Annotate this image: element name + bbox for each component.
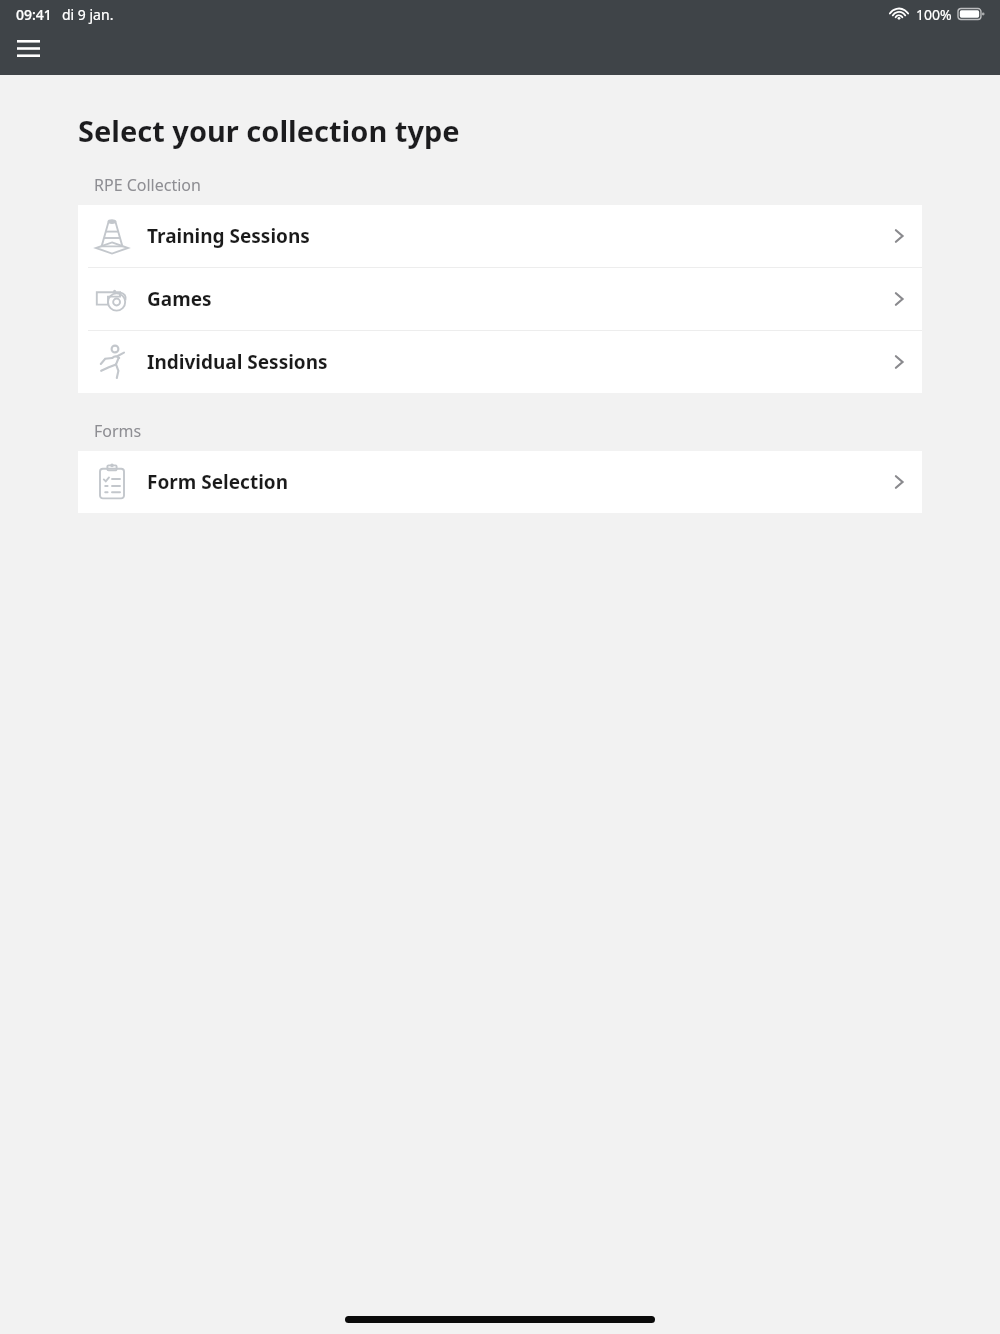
staticText: RPE Collection bbox=[94, 174, 201, 196]
staticText: Forms bbox=[94, 420, 142, 442]
button[interactable]: Training Sessions bbox=[78, 205, 922, 267]
button[interactable]: Open navigation menu bbox=[8, 28, 48, 68]
staticText: di 9 jan. bbox=[62, 5, 114, 24]
button[interactable]: Games bbox=[78, 268, 922, 330]
staticText: Select your collection type bbox=[78, 111, 460, 150]
staticText: 09:41 bbox=[16, 5, 52, 24]
staticText: Games bbox=[147, 286, 212, 312]
staticText: Form Selection bbox=[147, 469, 289, 495]
button[interactable]: Form Selection bbox=[78, 451, 922, 513]
staticText: 100% bbox=[916, 5, 952, 24]
staticText: Individual Sessions bbox=[147, 349, 328, 375]
staticText: Training Sessions bbox=[147, 223, 310, 249]
button[interactable]: Individual Sessions bbox=[78, 331, 922, 393]
